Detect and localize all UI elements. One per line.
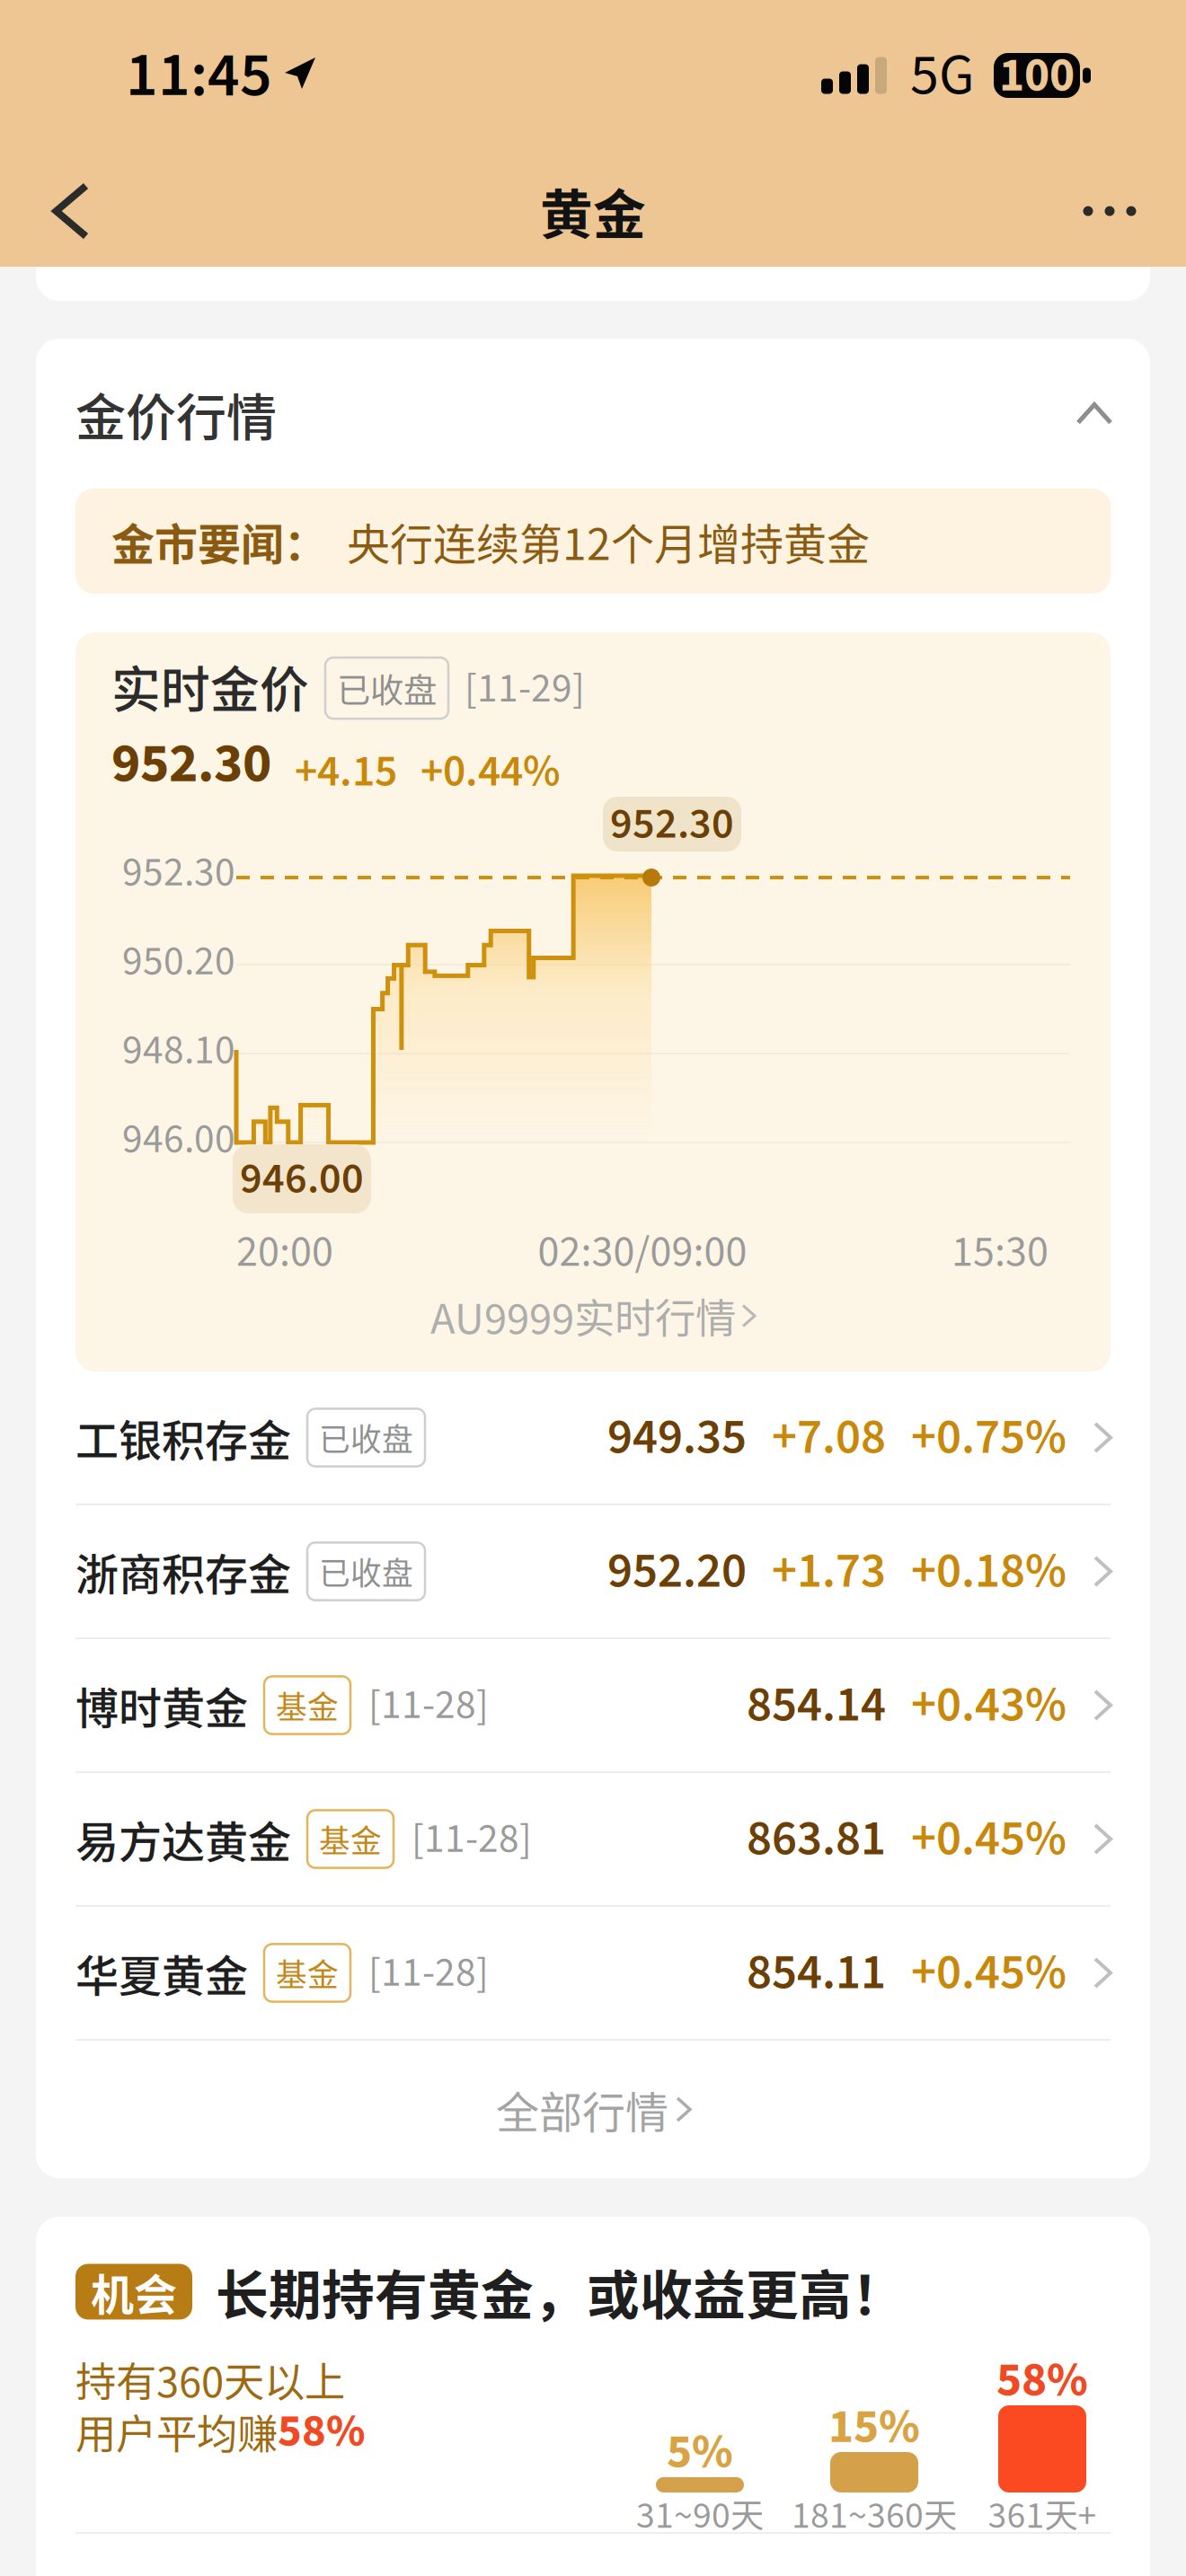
button[interactable]: 浙商积存金 <box>36 1505 1150 1637</box>
button[interactable]: Back <box>22 162 120 260</box>
staticText: [11-28] <box>368 1676 489 1734</box>
staticText: 02:30/09:00 <box>538 1222 747 1283</box>
staticText: +0.45% <box>911 1804 1067 1874</box>
button[interactable]: 华夏黄金 <box>36 1907 1150 2039</box>
staticText: 952.30 <box>111 725 271 803</box>
staticText: +0.45% <box>911 1938 1067 2008</box>
staticText: [11-28] <box>368 1944 489 2002</box>
staticText: 基金 <box>319 1816 382 1862</box>
staticText: 实时金价 <box>111 650 309 721</box>
staticText: 机会 <box>91 2260 177 2323</box>
staticText: [11-29] <box>465 660 585 718</box>
staticText: 100 <box>999 41 1075 109</box>
staticText: 361天+ <box>988 2489 1097 2537</box>
staticText: [11-28] <box>412 1810 532 1868</box>
staticText: 58% <box>278 2399 365 2464</box>
staticText: 已收盘 <box>337 664 437 712</box>
staticText: 946.00 <box>240 1148 364 1210</box>
staticText: 金价行情 <box>75 377 277 450</box>
staticText: 浙商积存金 <box>75 1540 291 1603</box>
staticText: 20:00 <box>236 1222 333 1283</box>
staticText: 博时黄金 <box>75 1674 248 1736</box>
staticText: 31~90天 <box>636 2489 764 2537</box>
button[interactable]: More <box>1060 162 1159 260</box>
staticText: 金市要闻： <box>111 510 327 572</box>
staticText: 工银积存金 <box>75 1406 291 1469</box>
staticText: 949.35 <box>607 1403 747 1472</box>
staticText: 11:45 <box>126 31 272 120</box>
staticText: 央行连续第12个月增持黄金 <box>347 510 870 572</box>
staticText: 854.11 <box>747 1938 886 2008</box>
staticText: 易方达黄金 <box>75 1808 291 1870</box>
staticText: 5% <box>667 2418 733 2486</box>
staticText: +1.73 <box>772 1536 886 1606</box>
button[interactable]: 博时黄金 <box>36 1639 1150 1771</box>
button[interactable]: AU9999实时行情 <box>75 1277 1110 1354</box>
staticText: +4.15 <box>295 740 397 803</box>
staticText: 950.20 <box>122 932 235 991</box>
staticText: 用户平均赚 <box>75 2402 278 2461</box>
staticText: 863.81 <box>747 1804 886 1874</box>
staticText: 黄金 <box>540 173 646 249</box>
staticText: 已收盘 <box>319 1549 413 1594</box>
staticText: +0.43% <box>911 1670 1067 1740</box>
staticText: 持有360天以上 <box>75 2350 345 2409</box>
staticText: AU9999实时行情 <box>430 1286 736 1345</box>
staticText: +7.08 <box>772 1403 886 1472</box>
staticText: 948.10 <box>122 1021 235 1079</box>
staticText: 基金 <box>276 1950 339 1995</box>
staticText: 58% <box>996 2346 1088 2414</box>
staticText: 已收盘 <box>319 1415 413 1460</box>
staticText: 181~360天 <box>792 2489 957 2537</box>
staticText: +0.18% <box>911 1536 1067 1606</box>
staticText: 全部行情 <box>496 2078 668 2141</box>
staticText: 952.30 <box>122 844 235 902</box>
staticText: 15% <box>828 2393 920 2461</box>
staticText: 基金 <box>276 1683 339 1728</box>
staticText: 854.14 <box>747 1670 886 1740</box>
staticText: 946.00 <box>122 1110 235 1168</box>
button[interactable]: 金价行情 <box>36 339 1150 489</box>
staticText: 952.20 <box>607 1536 747 1606</box>
staticText: 5G <box>910 34 974 116</box>
staticText: 华夏黄金 <box>75 1942 248 2004</box>
staticText: +0.75% <box>911 1403 1067 1472</box>
staticText: +0.44% <box>420 740 560 803</box>
staticText: 长期持有黄金，或收益更高！ <box>216 2254 905 2330</box>
button[interactable]: 全部行情 <box>36 2041 1150 2178</box>
button[interactable]: 易方达黄金 <box>36 1773 1150 1905</box>
staticText: 952.30 <box>610 793 734 855</box>
button[interactable]: 金市要闻： <box>75 489 1111 594</box>
button[interactable]: 工银积存金 <box>36 1372 1150 1504</box>
staticText: 15:30 <box>951 1222 1049 1283</box>
